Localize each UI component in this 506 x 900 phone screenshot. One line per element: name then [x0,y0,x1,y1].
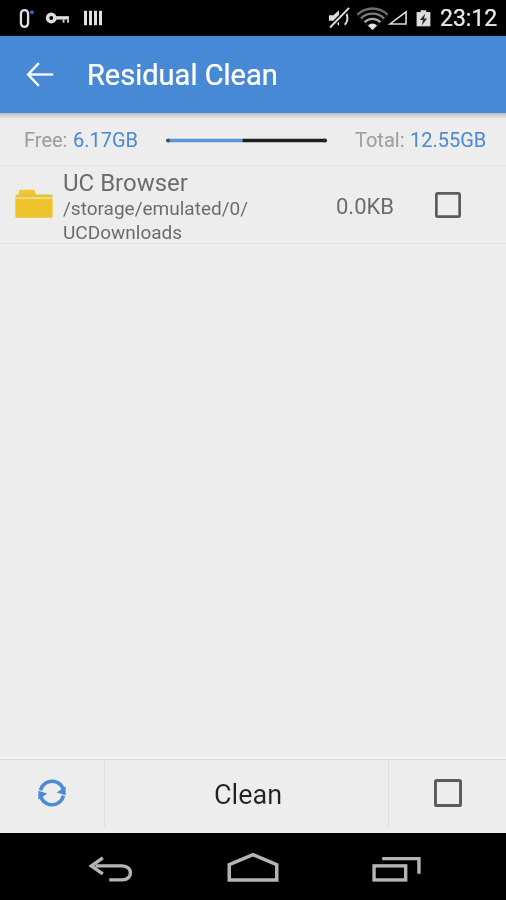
staticText: /storage/emulated/0/ UCDownloads [63,197,249,244]
staticText: Clean [214,779,283,811]
button[interactable]: UC Browser [0,166,506,243]
button[interactable]: Recent apps [355,833,453,900]
button[interactable]: Home [204,833,302,900]
button[interactable]: Select all [389,760,506,826]
staticText: 12.55GB [410,128,487,151]
staticText: 23:12 [440,5,498,32]
staticText: 0.0KB [336,194,395,220]
button[interactable]: Select UC Browser [423,180,473,230]
button[interactable]: Back [0,36,80,113]
staticText: 6.17GB [73,128,139,151]
button[interactable]: Refresh [0,760,104,826]
staticText: UC Browser [63,169,188,197]
button[interactable]: Back [53,833,151,900]
button[interactable]: Clean [105,760,388,826]
staticText: Residual Clean [87,58,278,92]
staticText: Free: [24,128,73,151]
staticText: Total: [355,128,410,151]
